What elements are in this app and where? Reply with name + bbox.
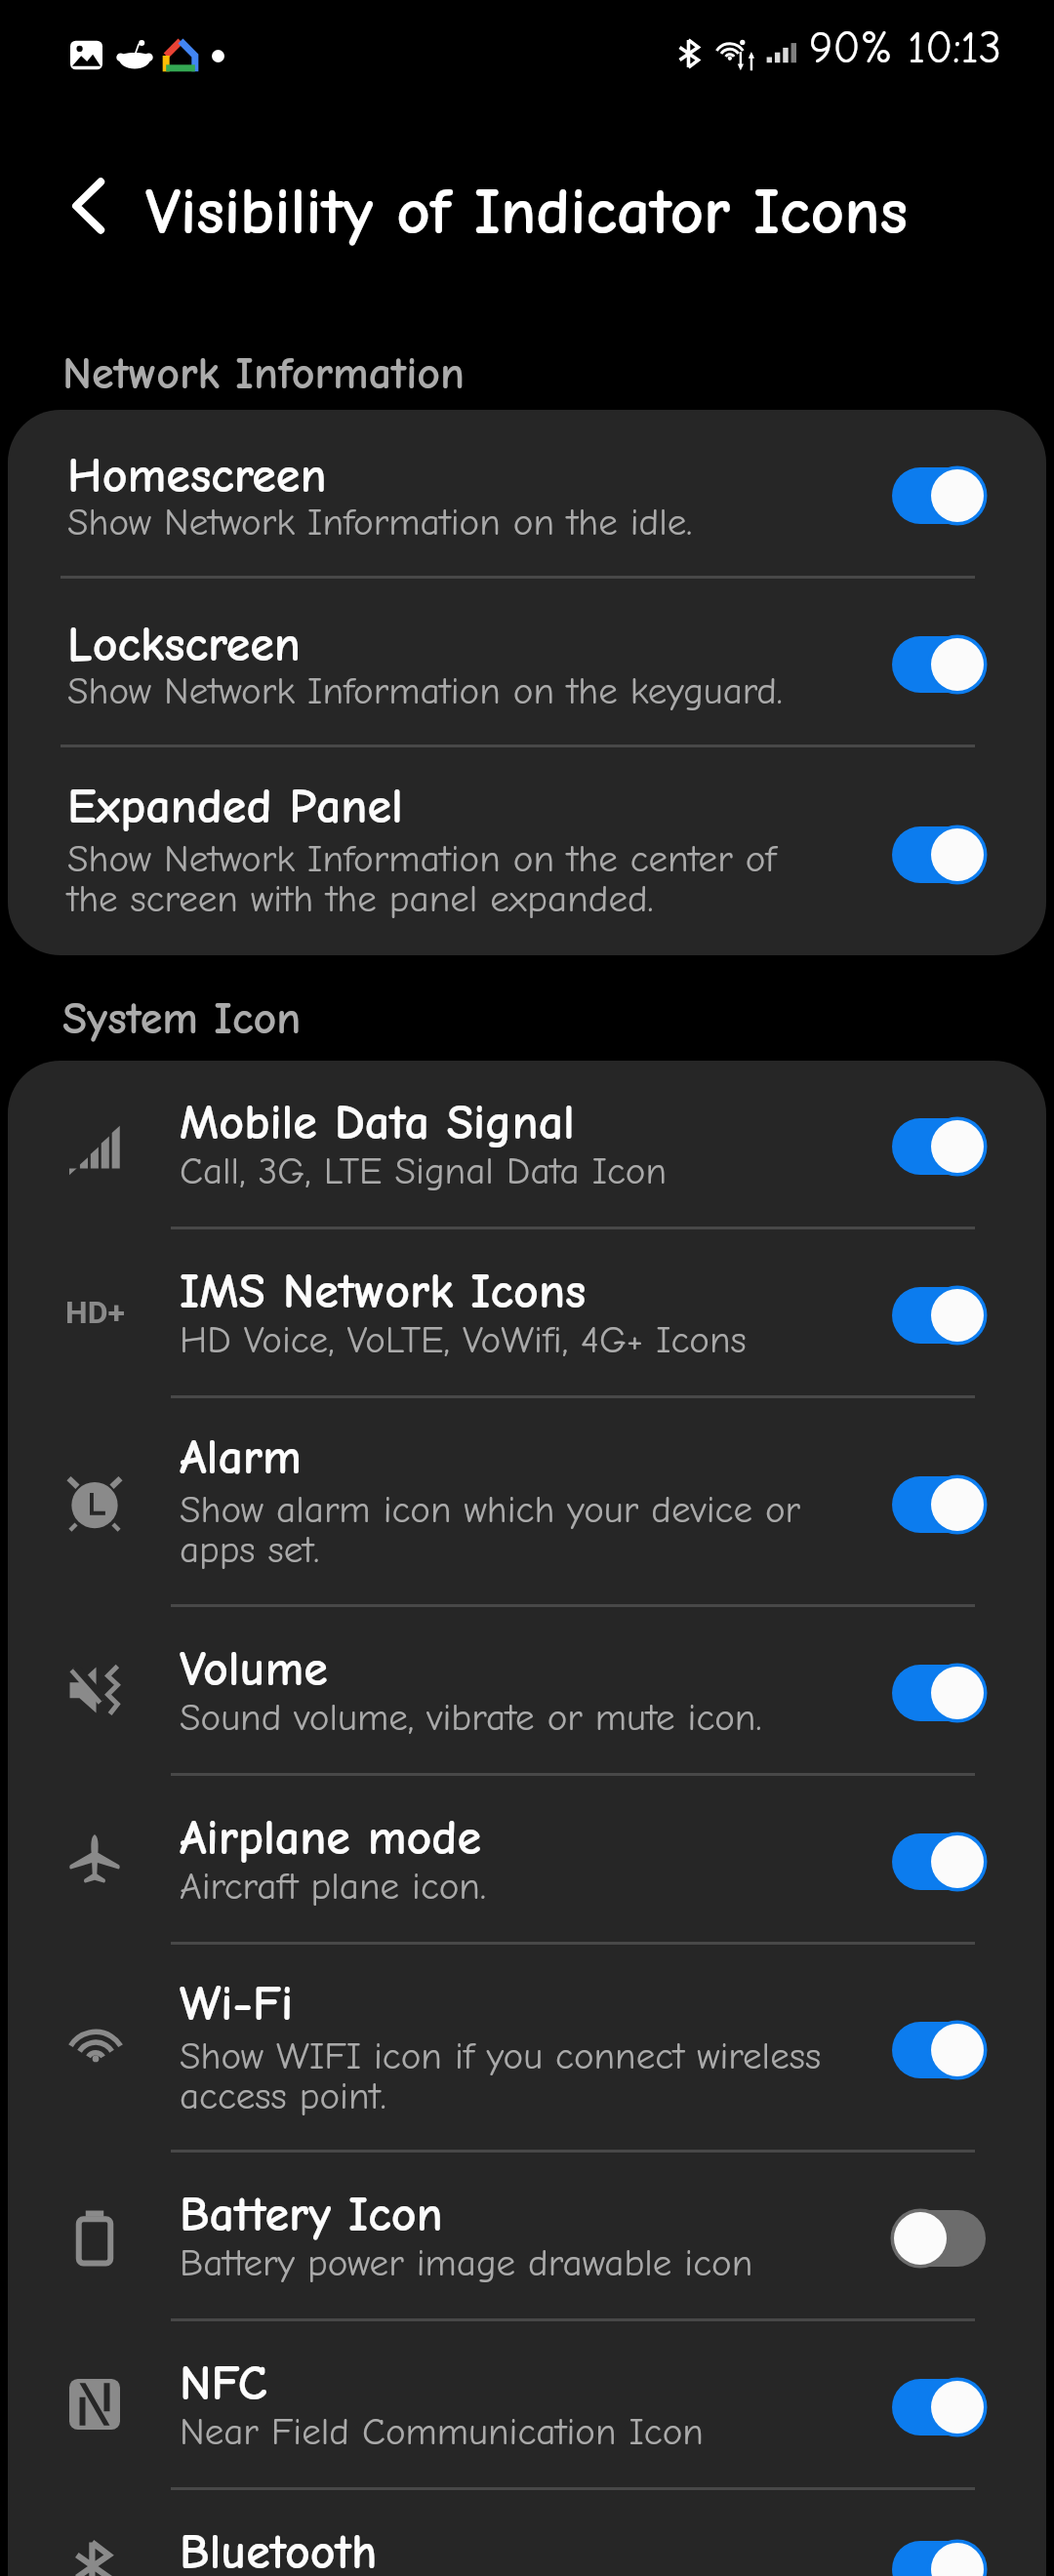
staticText: Show alarm icon which your device or app…	[180, 1488, 801, 1572]
staticText: Show WIFI icon if you connect wireless a…	[180, 2034, 822, 2118]
staticText: Network Information	[62, 348, 466, 400]
button[interactable]: Switch on	[892, 1118, 986, 1175]
staticText: Volume	[180, 1641, 328, 1698]
button[interactable]: Switch on	[892, 1833, 986, 1890]
button[interactable]: Airplane mode	[8, 1776, 1046, 1942]
staticText: Expanded Panel	[67, 779, 403, 835]
button[interactable]: Switch on	[892, 1665, 986, 1721]
staticText: Airplane mode	[180, 1810, 481, 1867]
button[interactable]: HD+	[8, 1229, 1046, 1395]
staticText: Show Network Information on the keyguard…	[67, 669, 783, 713]
button[interactable]: Switch on	[892, 2022, 986, 2078]
button[interactable]: Switch on	[892, 1476, 986, 1533]
button[interactable]: Switch on	[892, 2379, 986, 2435]
button[interactable]: Wi-Fi	[8, 1945, 1046, 2150]
button[interactable]: NFC	[8, 2321, 1046, 2487]
staticText: Battery power image drawable icon	[180, 2241, 753, 2285]
button[interactable]: Mobile Data Signal	[8, 1061, 1046, 1227]
staticText: Show Network Information on the idle.	[67, 501, 693, 544]
staticText: Homescreen	[67, 448, 327, 504]
button[interactable]: Switch on	[892, 1287, 986, 1344]
staticText: Battery Icon	[180, 2187, 443, 2243]
staticText: Mobile Data Signal	[180, 1095, 575, 1151]
staticText: System Icon	[62, 993, 302, 1045]
button[interactable]: Volume	[8, 1607, 1046, 1773]
button[interactable]: Switch off	[892, 2210, 986, 2267]
staticText: 90% 10:13	[809, 22, 1001, 74]
button[interactable]: Navigate back	[39, 159, 141, 253]
staticText: IMS Network Icons	[180, 1264, 587, 1320]
staticText: NFC	[180, 2355, 267, 2412]
staticText: Call, 3G, LTE Signal Data Icon	[180, 1149, 667, 1193]
staticText: Wi-Fi	[180, 1976, 294, 2033]
button[interactable]: Switch on	[892, 636, 986, 693]
staticText: Show Network Information on the center o…	[67, 837, 777, 921]
staticText: Bluetooth	[180, 2524, 378, 2576]
staticText: Alarm	[180, 1429, 302, 1486]
button[interactable]: Expanded Panel	[8, 747, 1046, 955]
staticText: HD Voice, VoLTE, VoWifi, 4G+ Icons	[180, 1318, 747, 1362]
button[interactable]: Homescreen	[8, 410, 1046, 576]
staticText: Sound volume, vibrate or mute icon.	[180, 1696, 762, 1740]
button[interactable]: Switch on	[892, 2541, 986, 2576]
button[interactable]: Switch on	[892, 826, 986, 883]
button[interactable]: Alarm	[8, 1398, 1046, 1604]
button[interactable]: Switch on	[892, 467, 986, 524]
button[interactable]: Battery Icon	[8, 2153, 1046, 2318]
button[interactable]: Bluetooth	[8, 2490, 1046, 2576]
staticText: Lockscreen	[67, 617, 301, 673]
staticText: Near Field Communication Icon	[180, 2410, 704, 2454]
staticText: Visibility of Indicator Icons	[145, 175, 909, 250]
staticText: Aircraft plane icon.	[180, 1865, 486, 1909]
button[interactable]: Lockscreen	[8, 579, 1046, 745]
staticText: HD+	[65, 1294, 125, 1331]
